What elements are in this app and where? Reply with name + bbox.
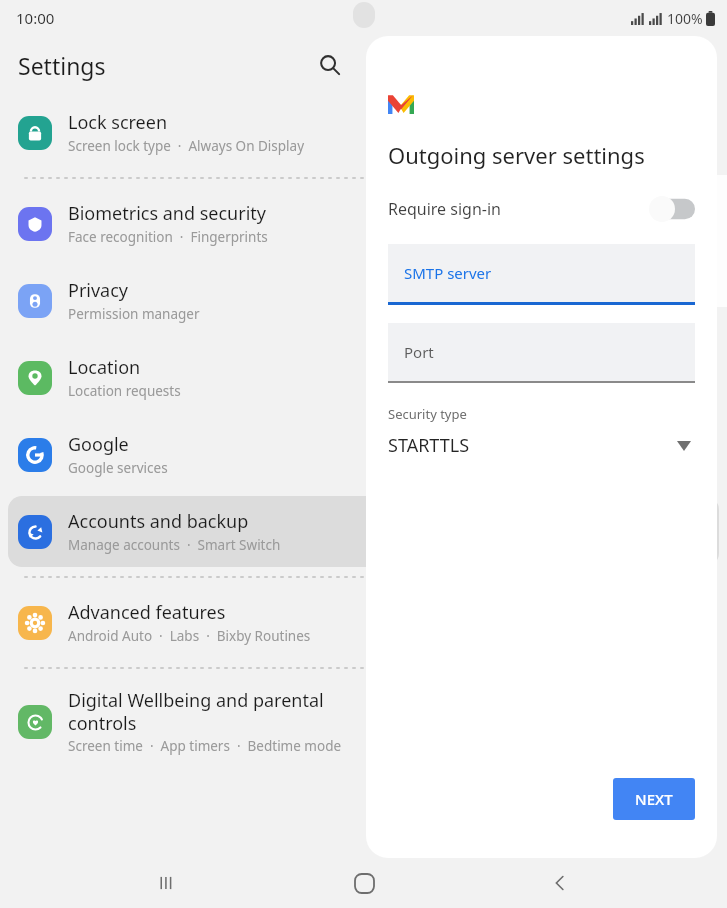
staticText: STARTTLS [388,433,677,458]
button[interactable]: Back [530,858,590,908]
staticText: Lock screen [68,110,338,135]
button[interactable]: Location [8,342,719,413]
staticText: Port [404,342,434,362]
staticText: Outgoing server settings [388,140,645,170]
button[interactable]: STARTTLS [388,433,695,458]
staticText: Privacy [68,278,338,303]
staticText: Face recognition · Fingerprints [68,228,268,246]
staticText: Digital Wellbeing and parental controls [68,688,338,735]
staticText: Screen lock type · Always On Display [68,137,305,155]
button[interactable]: Biometrics and security [8,188,719,259]
button[interactable]: Accounts and backup [8,496,719,567]
staticText: Require sign-in [388,198,649,220]
staticText: Accounts and backup [68,509,338,534]
staticText: 10:00 [16,8,55,28]
staticText: Location [68,355,338,380]
staticText: Screen time · App timers · Bedtime mode [68,737,342,755]
staticText: SMTP server [404,263,492,283]
button[interactable]: Privacy [8,265,719,336]
button[interactable]: Lock screen [8,97,719,168]
button[interactable]: Home [334,858,394,908]
staticText: Location requests [68,382,181,400]
button[interactable]: Search [308,43,352,87]
staticText: 100% [667,9,703,28]
button[interactable]: Port [388,323,695,383]
staticText: Android Auto · Labs · Bixby Routines [68,627,311,645]
staticText: NEXT [635,789,673,809]
staticText: Security type [388,405,467,423]
staticText: Google services [68,459,168,477]
staticText: Biometrics and security [68,201,338,226]
staticText: Settings [18,50,106,81]
button[interactable]: Require sign-in [388,196,695,222]
staticText: Permission manager [68,305,200,323]
button[interactable]: Advanced features [8,587,719,658]
staticText: Google [68,432,338,457]
button[interactable]: Digital Wellbeing and parental controls [8,678,719,765]
button[interactable]: NEXT [613,778,695,820]
staticText: Advanced features [68,600,338,625]
button[interactable]: Google [8,419,719,490]
staticText: Manage accounts · Smart Switch [68,536,281,554]
button[interactable]: Recent apps [137,858,197,908]
button[interactable]: SMTP server [388,244,695,305]
